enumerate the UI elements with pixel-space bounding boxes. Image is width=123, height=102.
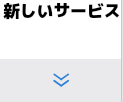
staticText: 新しいサービス — [3, 0, 121, 22]
button[interactable]: Expand — [47, 67, 75, 91]
